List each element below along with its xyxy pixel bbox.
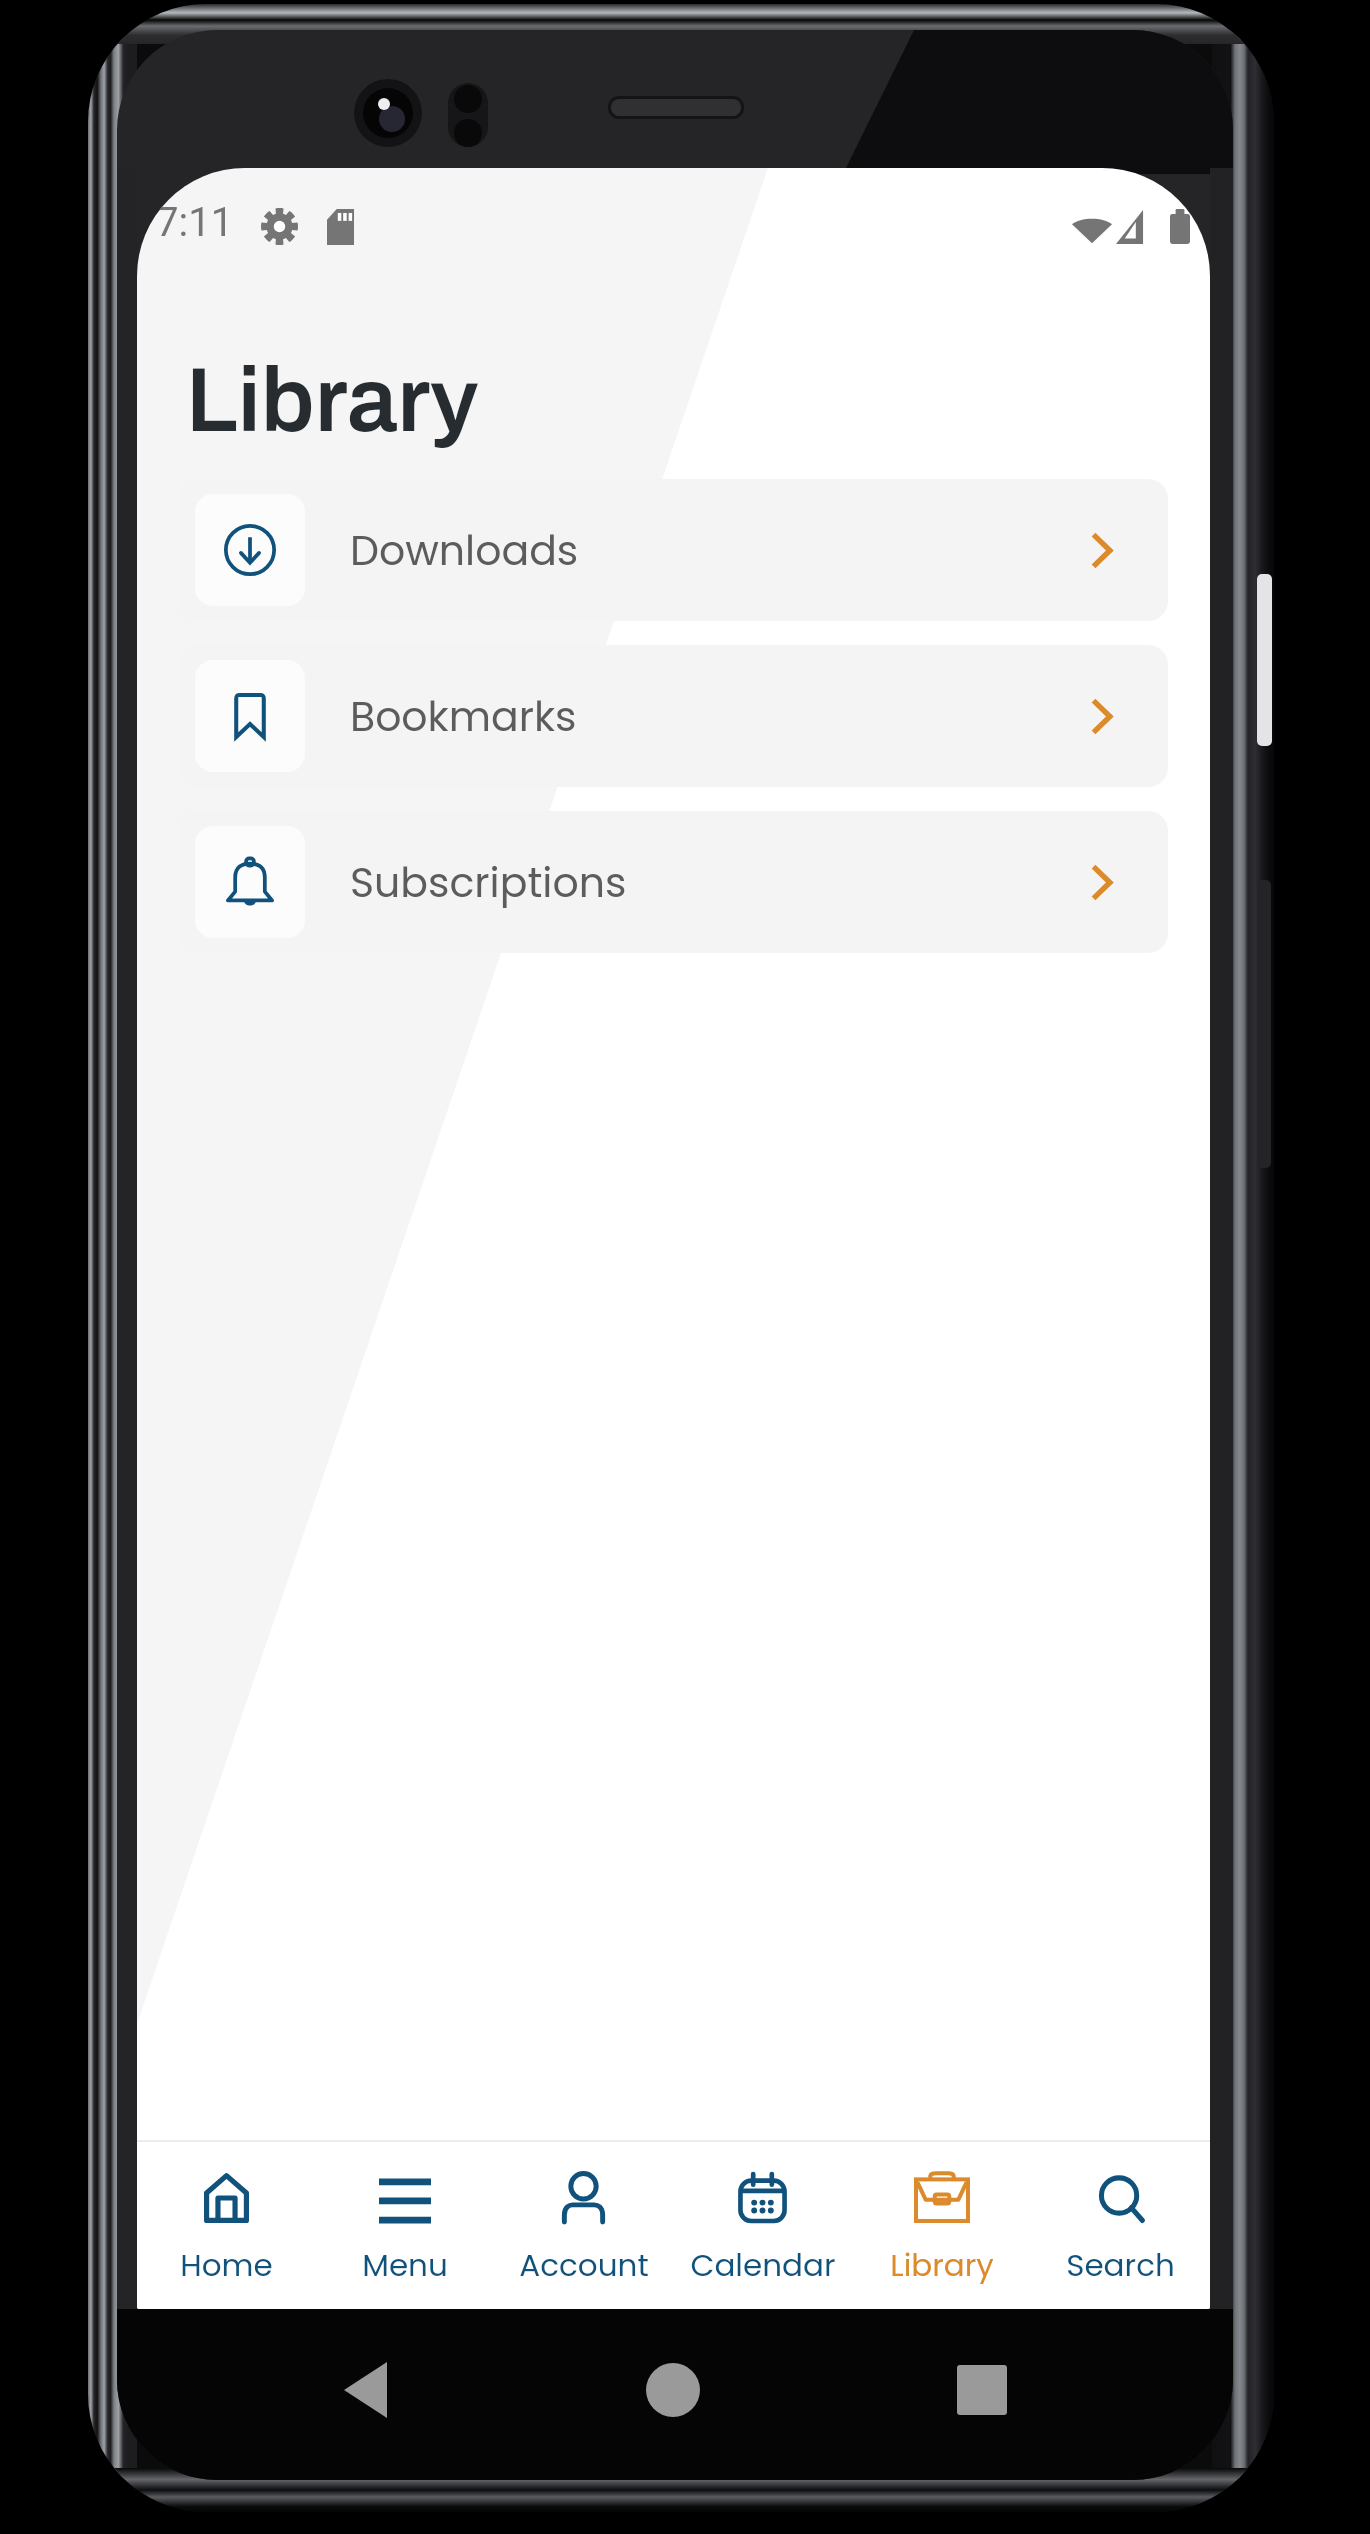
staticText: Library (890, 2243, 994, 2286)
button[interactable]: Menu (315, 2142, 494, 2309)
staticText: Downloads (350, 522, 579, 579)
staticText: Menu (362, 2243, 448, 2286)
staticText: Bookmarks (350, 688, 577, 745)
button[interactable]: Calendar (673, 2142, 852, 2309)
staticText: Account (519, 2243, 649, 2286)
button[interactable]: Bookmarks (179, 645, 1168, 787)
staticText: Calendar (690, 2243, 836, 2286)
button[interactable]: Library (852, 2142, 1031, 2309)
staticText: Search (1066, 2243, 1175, 2286)
button[interactable]: Subscriptions (179, 811, 1168, 953)
button[interactable]: Downloads (179, 479, 1168, 621)
button[interactable]: Home (137, 2142, 315, 2309)
button[interactable]: Search (1031, 2142, 1210, 2309)
staticText: Home (180, 2243, 273, 2286)
staticText: Library (186, 351, 479, 450)
button[interactable]: Account (494, 2142, 673, 2309)
staticText: Subscriptions (350, 854, 627, 911)
staticText: 7:11 (156, 199, 234, 246)
